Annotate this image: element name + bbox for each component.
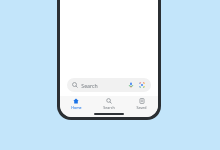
button[interactable]: Google Lens: [138, 81, 146, 89]
button[interactable]: Saved: [125, 96, 158, 111]
staticText: Home: [71, 105, 82, 110]
staticText: Saved: [136, 105, 147, 110]
button[interactable]: Search: [67, 78, 151, 92]
button[interactable]: Home: [60, 96, 92, 111]
button[interactable]: Search: [92, 96, 125, 111]
staticText: Search: [103, 105, 115, 110]
button[interactable]: Voice search: [127, 81, 135, 89]
staticText: Search: [81, 82, 98, 89]
